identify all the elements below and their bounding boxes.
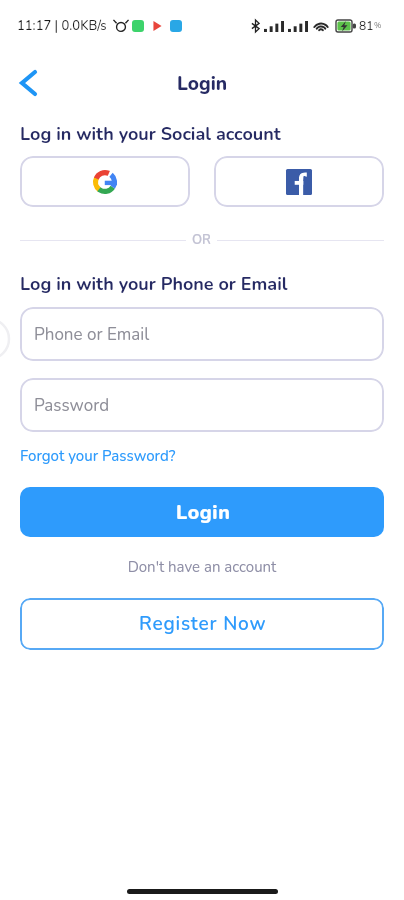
- button[interactable]: Register Now: [20, 598, 384, 650]
- button[interactable]: Login: [20, 487, 384, 537]
- button[interactable]: Forgot your Password?: [20, 446, 176, 466]
- staticText: Log in with your Phone or Email: [20, 272, 288, 297]
- button[interactable]: Sign in with Google: [20, 156, 190, 207]
- button[interactable]: Password: [20, 378, 384, 432]
- staticText: Login: [0, 71, 404, 97]
- staticText: Don't have an account: [0, 557, 404, 577]
- staticText: %: [374, 20, 382, 31]
- staticText: 81: [359, 18, 374, 34]
- button[interactable]: Back: [8, 63, 48, 103]
- staticText: Login: [176, 499, 231, 526]
- staticText: Register Now: [139, 611, 267, 637]
- button[interactable]: Sign in with Facebook: [214, 156, 384, 207]
- staticText: Phone or Email: [34, 323, 150, 346]
- staticText: 11:17 | 0.0KB/s: [17, 17, 107, 35]
- staticText: Log in with your Social account: [20, 122, 281, 147]
- staticText: OR: [192, 231, 211, 249]
- button[interactable]: Phone or Email: [20, 307, 384, 361]
- staticText: Password: [34, 394, 110, 417]
